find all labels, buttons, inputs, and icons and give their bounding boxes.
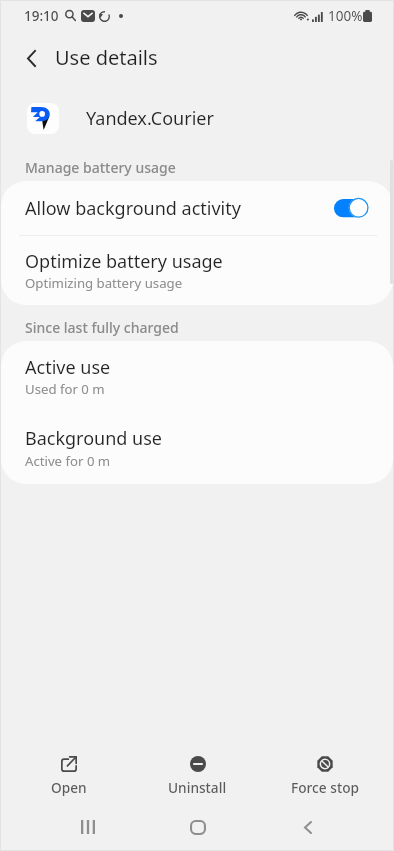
button[interactable] xyxy=(0,341,394,412)
button[interactable]: Allow background activity xyxy=(334,197,369,219)
button[interactable]: Back xyxy=(13,40,49,76)
staticText: Optimizing battery usage xyxy=(25,274,183,292)
staticText: Use details xyxy=(55,44,158,71)
button[interactable]: Force stop xyxy=(277,740,373,808)
button[interactable] xyxy=(0,181,394,235)
button[interactable]: Recent apps xyxy=(63,802,113,851)
staticText: Yandex.Courier xyxy=(86,106,214,131)
button[interactable]: Back xyxy=(283,802,333,851)
button[interactable] xyxy=(0,236,394,305)
staticText: Used for 0 m xyxy=(25,380,105,398)
button[interactable]: Uninstall xyxy=(149,740,245,808)
staticText: 100% xyxy=(328,7,363,25)
staticText: 19:10 xyxy=(24,7,59,25)
button[interactable] xyxy=(0,412,394,483)
staticText: Allow background activity xyxy=(25,196,241,221)
staticText: Optimize battery usage xyxy=(25,249,223,274)
staticText: Active use xyxy=(25,355,111,380)
staticText: Force stop xyxy=(291,778,359,797)
staticText: Background use xyxy=(25,426,162,451)
button[interactable]: Open xyxy=(21,740,117,808)
staticText: Uninstall xyxy=(168,778,227,797)
staticText: Active for 0 m xyxy=(25,452,111,470)
staticText: Open xyxy=(51,778,87,797)
button[interactable]: Home xyxy=(173,802,223,851)
staticText: Since last fully charged xyxy=(25,318,179,337)
staticText: Manage battery usage xyxy=(25,158,176,177)
